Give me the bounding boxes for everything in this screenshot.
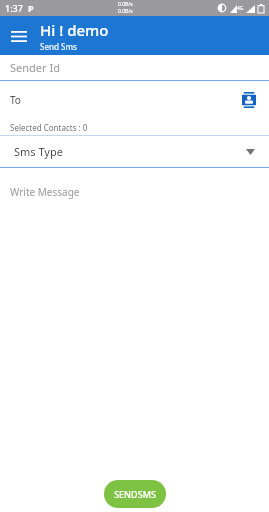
button[interactable]: Pick contacts	[239, 90, 259, 110]
staticText: 1:37	[5, 2, 23, 14]
staticText: Hi ! demo	[40, 20, 109, 40]
button[interactable]: To	[10, 93, 239, 107]
staticText: P	[28, 2, 34, 14]
button[interactable]: SENDSMS	[104, 480, 166, 508]
staticText: 0.0B/s	[118, 1, 133, 8]
button[interactable]: Write Message	[0, 168, 269, 512]
button[interactable]: Selected Contacts : 0	[0, 119, 269, 135]
button[interactable]: Sms Type	[0, 136, 269, 167]
staticText: Sender Id	[10, 60, 60, 75]
button[interactable]: Sender Id	[0, 55, 269, 80]
staticText: 0.0B/s	[118, 8, 133, 15]
staticText: SENDSMS	[114, 488, 156, 500]
staticText: Send Sms	[40, 41, 77, 52]
button[interactable]: Open navigation menu	[6, 23, 32, 49]
staticText: 4G	[237, 5, 244, 12]
staticText: Sms Type	[14, 144, 246, 159]
staticText: To	[10, 93, 21, 107]
staticText: Selected Contacts : 0	[10, 122, 88, 133]
staticText: Write Message	[10, 185, 80, 199]
